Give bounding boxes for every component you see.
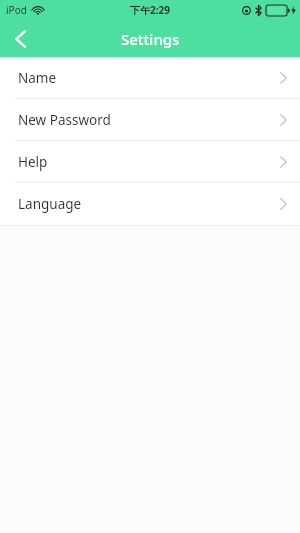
button[interactable]: Name bbox=[0, 57, 300, 98]
staticText: Name bbox=[18, 69, 57, 87]
staticText: Settings bbox=[121, 29, 180, 49]
staticText: 下午2:29 bbox=[130, 3, 170, 17]
button[interactable]: Language bbox=[0, 183, 300, 225]
button[interactable]: Help bbox=[0, 141, 300, 182]
button[interactable]: Back bbox=[0, 20, 40, 57]
staticText: New Password bbox=[18, 111, 111, 129]
button[interactable]: New Password bbox=[0, 99, 300, 140]
staticText: iPod bbox=[6, 3, 27, 17]
staticText: Help bbox=[18, 153, 48, 171]
staticText: Language bbox=[18, 195, 82, 213]
